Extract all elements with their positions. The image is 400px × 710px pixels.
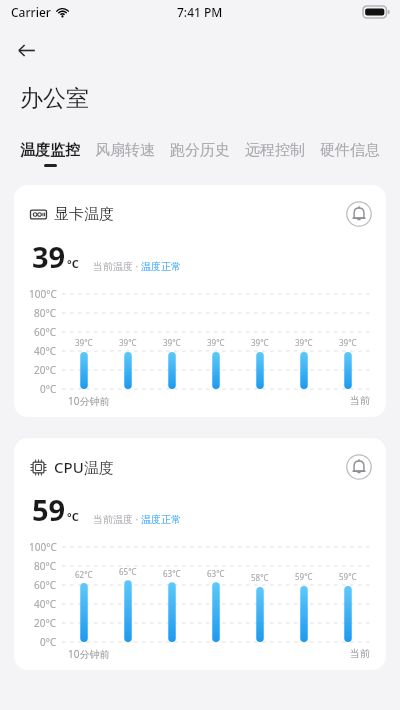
- button[interactable]: 温度监控: [20, 141, 95, 167]
- staticText: 63°C: [163, 568, 181, 579]
- staticText: 60°C: [34, 578, 57, 592]
- button[interactable]: Back: [6, 30, 46, 70]
- staticText: 40°C: [34, 597, 57, 611]
- staticText: 显卡温度: [54, 205, 114, 224]
- button[interactable]: Alarm settings: [346, 454, 372, 480]
- staticText: 20°C: [34, 363, 57, 377]
- staticText: 63°C: [207, 568, 225, 579]
- staticText: 39°C: [75, 337, 93, 348]
- staticText: 7:41 PM: [177, 4, 223, 20]
- button[interactable]: 跑分历史: [170, 141, 245, 164]
- staticText: 10分钟前: [68, 394, 110, 408]
- staticText: 0°C: [40, 635, 57, 649]
- staticText: 办公室: [20, 84, 89, 113]
- staticText: 100°C: [29, 540, 57, 554]
- staticText: °C: [67, 256, 79, 271]
- staticText: 温度正常: [141, 513, 181, 526]
- staticText: 39°C: [119, 337, 137, 348]
- staticText: 80°C: [34, 306, 57, 320]
- staticText: 0°C: [40, 382, 57, 396]
- staticText: 39°C: [207, 337, 225, 348]
- staticText: 39°C: [339, 337, 357, 348]
- staticText: 硬件信息: [320, 141, 380, 160]
- button[interactable]: 显卡温度: [14, 185, 386, 417]
- staticText: 40°C: [34, 344, 57, 358]
- staticText: 温度正常: [141, 260, 181, 273]
- staticText: 100°C: [29, 287, 57, 301]
- staticText: °C: [67, 509, 79, 524]
- staticText: 58°C: [251, 572, 269, 583]
- staticText: 62°C: [75, 569, 93, 580]
- staticText: Carrier: [11, 4, 51, 20]
- staticText: 59°C: [295, 571, 313, 582]
- staticText: 温度监控: [20, 141, 80, 160]
- staticText: 39: [32, 237, 66, 276]
- staticText: 10分钟前: [68, 647, 110, 661]
- staticText: 39°C: [295, 337, 313, 348]
- staticText: 当前: [350, 394, 370, 407]
- staticText: 20°C: [34, 616, 57, 630]
- staticText: 风扇转速: [95, 141, 155, 160]
- button[interactable]: CPU温度: [14, 438, 386, 670]
- button[interactable]: 硬件信息: [320, 141, 395, 164]
- button[interactable]: 远程控制: [245, 141, 320, 164]
- button[interactable]: Alarm settings: [346, 201, 372, 227]
- staticText: 跑分历史: [170, 141, 230, 160]
- staticText: CPU温度: [54, 457, 114, 477]
- staticText: 65°C: [119, 566, 137, 577]
- button[interactable]: 风扇转速: [95, 141, 170, 164]
- staticText: 60°C: [34, 325, 57, 339]
- staticText: 当前温度 ·: [93, 259, 141, 273]
- staticText: 当前: [350, 647, 370, 660]
- staticText: 80°C: [34, 559, 57, 573]
- staticText: 39°C: [251, 337, 269, 348]
- staticText: 39°C: [163, 337, 181, 348]
- staticText: 59: [32, 490, 66, 529]
- staticText: 远程控制: [245, 141, 305, 160]
- staticText: 59°C: [339, 571, 357, 582]
- staticText: 当前温度 ·: [93, 512, 141, 526]
